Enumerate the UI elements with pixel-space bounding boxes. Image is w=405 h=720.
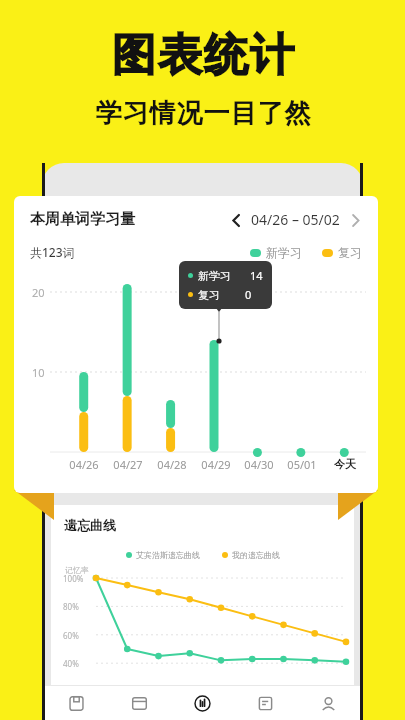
staticText: 图表统计 — [111, 28, 295, 83]
staticText: 04/29 — [201, 457, 231, 472]
staticText: 我的遗忘曲线 — [232, 550, 280, 560]
staticText: 艾宾浩斯遗忘曲线 — [136, 550, 200, 560]
staticText: 记忆率 — [65, 565, 89, 575]
staticText: 40% — [63, 658, 79, 669]
staticText: 05/01 — [287, 457, 317, 472]
staticText: 04/26 — [69, 457, 99, 472]
button[interactable]: Cards — [108, 686, 171, 720]
staticText: 80% — [63, 601, 79, 612]
staticText: 10 — [32, 365, 45, 380]
staticText: 共123词 — [30, 244, 75, 260]
button[interactable]: Profile — [297, 686, 360, 720]
staticText: 新学习 — [198, 269, 231, 283]
staticText: 20 — [32, 285, 45, 300]
staticText: 学习情况一目了然 — [95, 97, 311, 130]
staticText: 60% — [63, 630, 79, 641]
staticText: 04/27 — [113, 457, 143, 472]
staticText: 04/28 — [157, 457, 187, 472]
staticText: 遗忘曲线 — [64, 517, 116, 533]
staticText: 复习 — [198, 288, 220, 302]
button[interactable]: Statistics — [171, 686, 234, 720]
button[interactable]: Notes — [234, 686, 297, 720]
staticText: 04/26 – 05/02 — [251, 210, 340, 229]
staticText: 今天 — [334, 457, 356, 471]
staticText: 新学习 — [266, 245, 302, 260]
staticText: 0 — [245, 287, 252, 302]
staticText: 04/30 — [244, 457, 274, 472]
staticText: 复习 — [338, 245, 362, 260]
staticText: 14 — [250, 268, 263, 283]
button[interactable]: Next week — [346, 211, 364, 229]
staticText: 本周单词学习量 — [30, 210, 135, 229]
staticText: 100% — [63, 573, 84, 584]
button[interactable]: Previous week — [227, 211, 245, 229]
button[interactable]: Library — [45, 686, 108, 720]
